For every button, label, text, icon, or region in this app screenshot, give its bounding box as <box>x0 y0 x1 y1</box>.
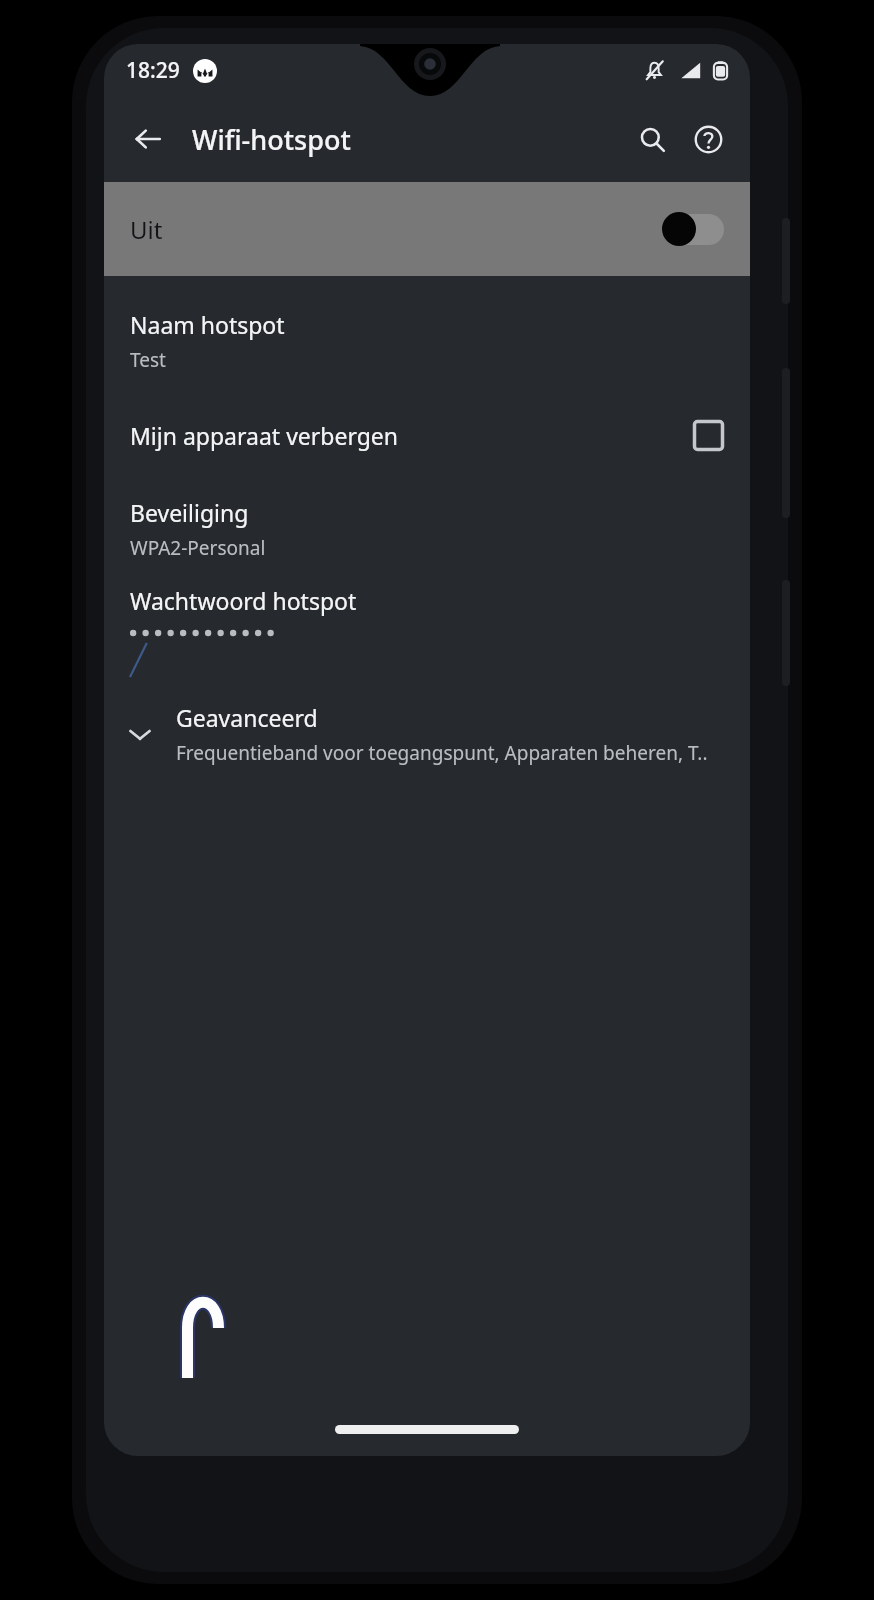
staticText: Geavanceerd <box>176 702 318 733</box>
staticText: Uit <box>130 213 163 246</box>
staticText: Naam hotspot <box>130 309 285 340</box>
staticText: Mijn apparaat verbergen <box>130 420 399 451</box>
button[interactable]: Geavanceerd <box>104 686 750 782</box>
button[interactable]: Beveiliging <box>104 482 750 576</box>
button[interactable]: Uit <box>104 182 750 276</box>
staticText: 18:29 <box>126 56 180 85</box>
staticText: Wifi-hotspot <box>192 121 351 158</box>
staticText: Test <box>130 347 166 373</box>
button[interactable]: Help <box>680 111 736 167</box>
button[interactable]: Wachtwoord hotspot <box>104 576 750 686</box>
staticText: WPA2-Personal <box>130 535 266 561</box>
button[interactable]: Zoeken <box>624 111 680 167</box>
staticText: Wachtwoord hotspot <box>130 585 357 616</box>
staticText: Beveiliging <box>130 497 249 528</box>
button[interactable]: Mijn apparaat verbergen <box>104 388 750 482</box>
button[interactable]: Terug <box>120 111 176 167</box>
button[interactable]: Naam hotspot <box>104 294 750 388</box>
staticText: Frequentieband voor toegangspunt, Appara… <box>176 740 708 766</box>
